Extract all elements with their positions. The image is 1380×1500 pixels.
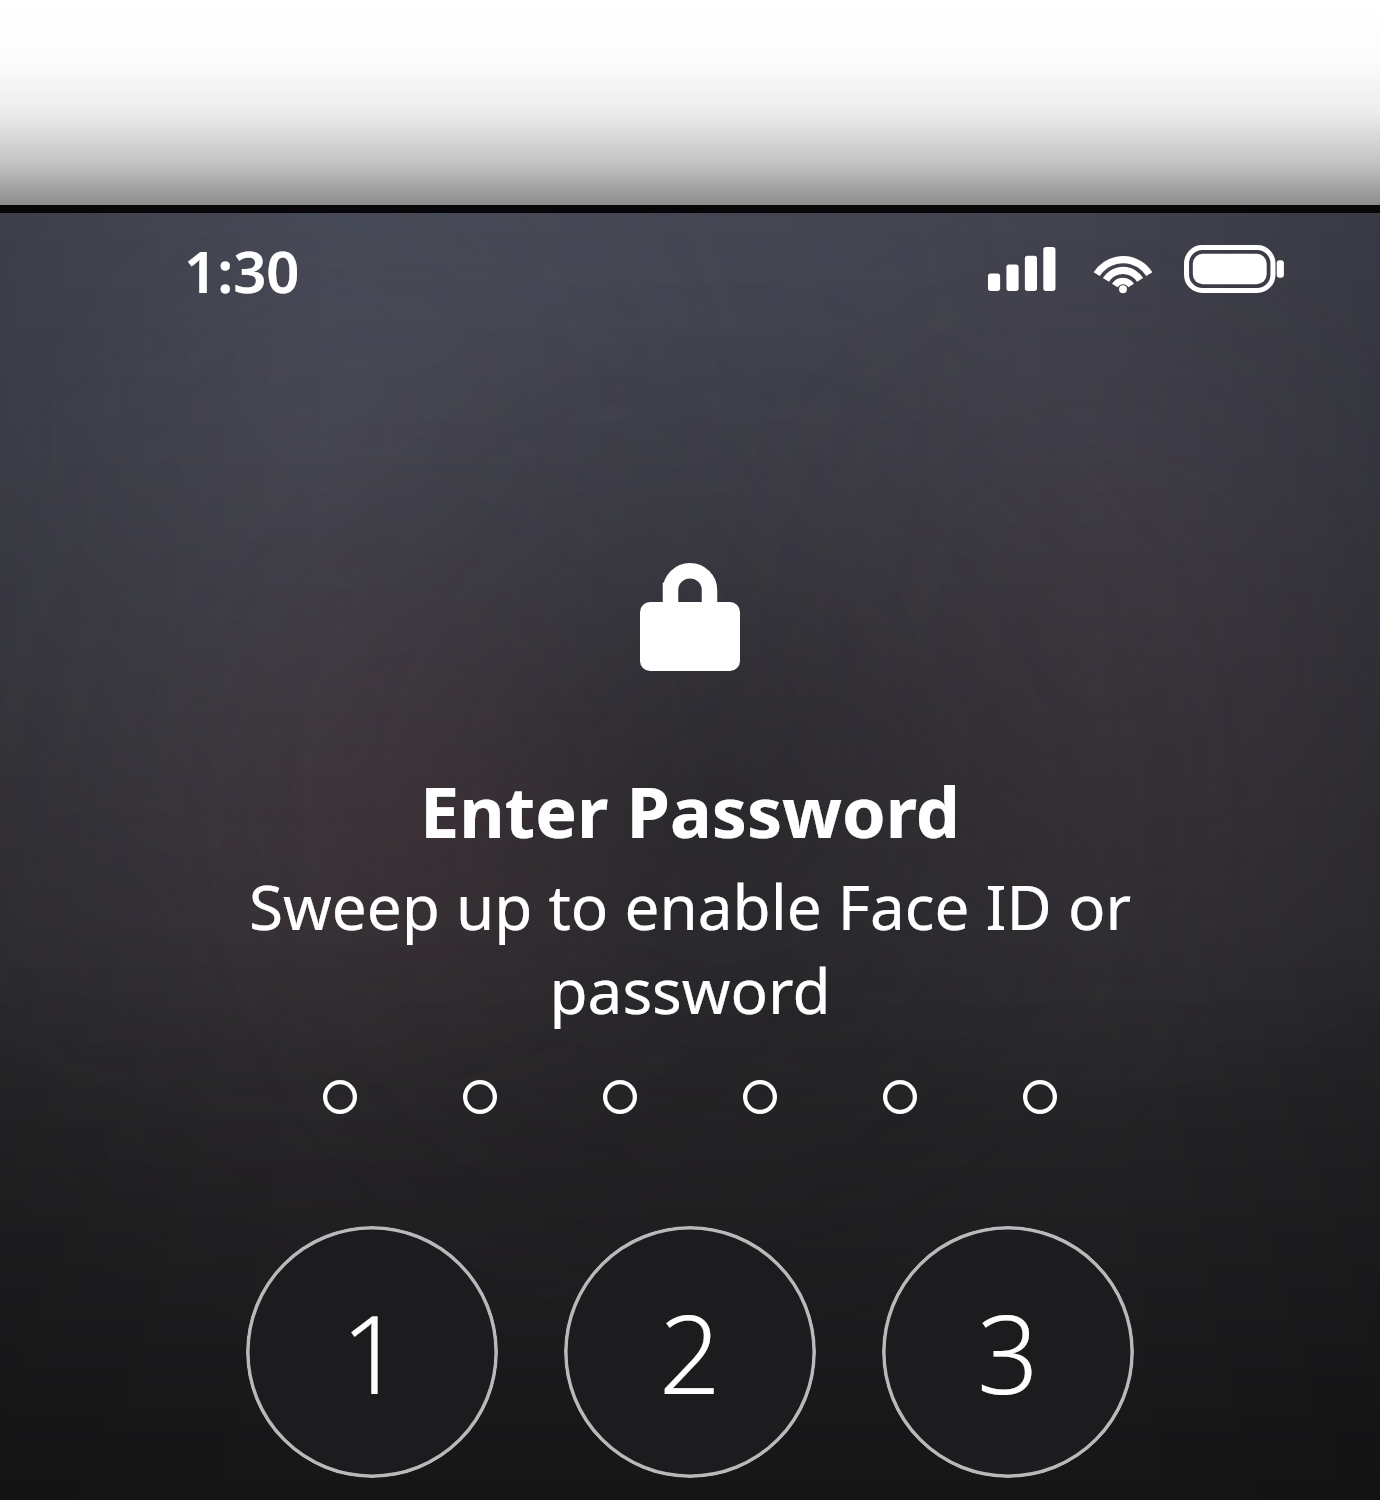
staticText: Enter Password [420, 763, 960, 858]
button[interactable]: 3 [882, 1226, 1134, 1478]
staticText: 1:30 [184, 231, 300, 310]
staticText: Sweep up to enable Face ID or password [205, 864, 1175, 1032]
button[interactable]: 2 [564, 1226, 816, 1478]
staticText: 3 [977, 1279, 1039, 1426]
staticText: 1 [341, 1279, 403, 1426]
staticText: 2 [659, 1279, 721, 1426]
button[interactable]: 1 [246, 1226, 498, 1478]
